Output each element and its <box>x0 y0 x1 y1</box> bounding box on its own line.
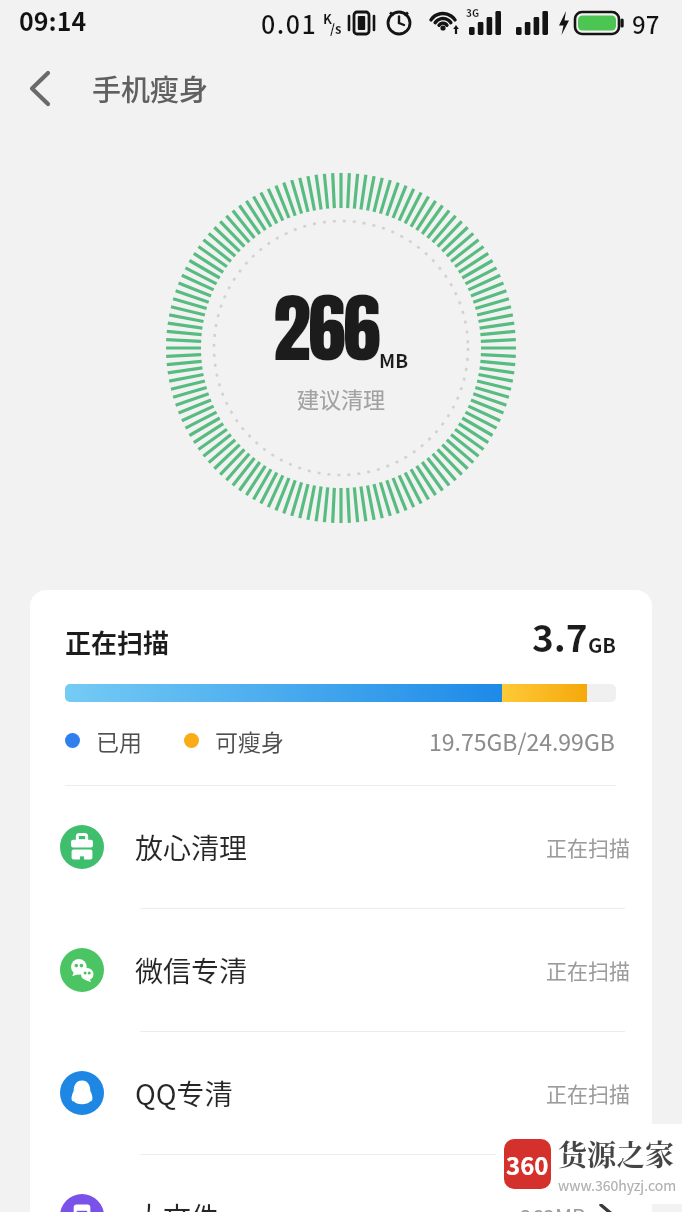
staticText: 0.01 <box>261 5 318 41</box>
staticText: 正在扫描 <box>546 955 630 985</box>
staticText: 3.7 <box>532 609 588 663</box>
button[interactable]: QQ专清 <box>60 1032 630 1154</box>
staticText: 3G <box>466 5 480 19</box>
staticText: 已用 <box>96 724 142 757</box>
button[interactable]: 放心清理 <box>60 786 630 908</box>
staticText: 可瘦身 <box>215 724 284 757</box>
staticText: 手机瘦身 <box>92 67 209 109</box>
staticText: 19.75GB/24.99GB <box>429 724 615 757</box>
staticText: 放心清理 <box>135 827 248 868</box>
button[interactable]: 大文件 <box>60 1155 630 1212</box>
staticText: GB <box>588 630 616 659</box>
button[interactable] <box>22 64 66 112</box>
staticText: 266 <box>273 271 379 385</box>
staticText: /s <box>330 19 342 38</box>
staticText: 微信专清 <box>135 950 248 991</box>
staticText: www.360hyzj.com <box>558 1175 677 1195</box>
staticText: 正在扫描 <box>65 623 170 661</box>
staticText: 262MB <box>520 1201 586 1212</box>
staticText: 正在扫描 <box>546 1078 630 1108</box>
staticText: 货源之家 <box>558 1133 675 1175</box>
staticText: QQ专清 <box>135 1073 233 1114</box>
staticText: 97 <box>632 6 660 41</box>
button[interactable]: 微信专清 <box>60 909 630 1031</box>
staticText: 正在扫描 <box>546 832 630 862</box>
staticText: 360 <box>506 1147 549 1182</box>
staticText: MB <box>379 346 409 374</box>
staticText: K <box>323 9 332 28</box>
staticText: 大文件 <box>135 1196 220 1212</box>
staticText: 09:14 <box>19 2 87 38</box>
staticText: 建议清理 <box>297 382 386 414</box>
